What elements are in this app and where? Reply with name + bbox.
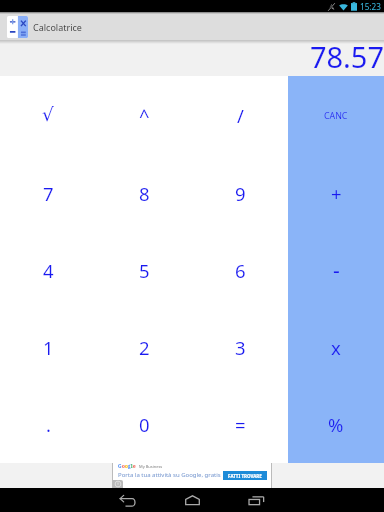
staticText: o <box>125 463 128 469</box>
staticText: 2 <box>139 335 150 360</box>
button[interactable]: G <box>112 463 272 488</box>
button[interactable]: 4 <box>0 232 96 309</box>
button[interactable]: Back <box>114 488 142 512</box>
staticText: / <box>237 103 244 128</box>
staticText: 1 <box>43 335 54 360</box>
button[interactable]: Home <box>178 488 206 512</box>
staticText: 7 <box>43 181 54 206</box>
staticText: % <box>328 412 344 437</box>
staticText: 15:23 <box>360 1 381 12</box>
staticText: CANC <box>324 110 348 122</box>
button[interactable]: CANC <box>288 76 384 154</box>
staticText: √ <box>42 104 54 126</box>
staticText: ^ <box>139 103 150 128</box>
button[interactable]: 9 <box>192 154 288 232</box>
staticText: 6 <box>235 258 246 283</box>
button[interactable]: 1 <box>0 309 96 386</box>
staticText: FATTI TROVARE <box>228 473 262 479</box>
button[interactable]: 6 <box>192 232 288 309</box>
button[interactable]: Calcolatrice <box>7 16 28 38</box>
button[interactable]: / <box>192 76 288 154</box>
button[interactable]: + <box>288 154 384 232</box>
button[interactable]: 7 <box>0 154 96 232</box>
button[interactable]: % <box>288 386 384 463</box>
staticText: . <box>46 412 51 437</box>
staticText: g <box>128 463 131 469</box>
button[interactable]: x <box>288 309 384 386</box>
button[interactable]: 0 <box>96 386 192 463</box>
staticText: 9 <box>235 181 246 206</box>
button[interactable]: 3 <box>192 309 288 386</box>
button[interactable]: . <box>0 386 96 463</box>
staticText: e <box>133 463 136 469</box>
staticText: Calcolatrice <box>33 21 82 33</box>
button[interactable]: Recent apps <box>242 488 270 512</box>
button[interactable]: Ad info <box>113 480 123 488</box>
staticText: = <box>235 412 246 437</box>
staticText: - <box>333 256 340 285</box>
staticText: My Business <box>139 464 163 469</box>
button[interactable]: 2 <box>96 309 192 386</box>
staticText: x <box>331 335 341 360</box>
button[interactable]: - <box>288 232 384 309</box>
staticText: 4 <box>43 258 54 283</box>
button[interactable]: FATTI TROVARE <box>223 471 267 480</box>
staticText: G <box>118 463 122 469</box>
staticText: 78.57 <box>309 37 384 73</box>
staticText: 8 <box>139 181 150 206</box>
button[interactable]: 5 <box>96 232 192 309</box>
staticText: 5 <box>139 258 150 283</box>
button[interactable]: 8 <box>96 154 192 232</box>
staticText: 0 <box>139 412 150 437</box>
staticText: + <box>331 181 342 206</box>
button[interactable]: √ <box>0 76 96 154</box>
button[interactable]: ^ <box>96 76 192 154</box>
staticText: o <box>122 463 125 469</box>
staticText: Porta la tua attività su Google, gratis <box>118 471 221 479</box>
staticText: l <box>131 463 133 469</box>
staticText: 3 <box>235 335 246 360</box>
button[interactable]: = <box>192 386 288 463</box>
